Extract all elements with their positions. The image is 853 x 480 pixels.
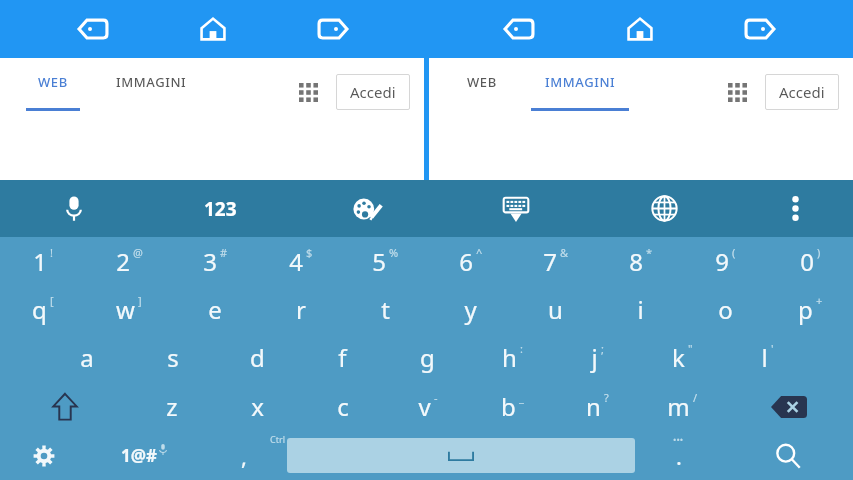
- staticText: 4: [289, 245, 303, 278]
- button[interactable]: x: [215, 382, 300, 431]
- staticText: WEB: [38, 73, 68, 91]
- staticText: 1@#: [121, 444, 157, 467]
- staticText: ": [688, 341, 693, 356]
- staticText: o: [718, 293, 733, 326]
- button[interactable]: l: [725, 333, 810, 382]
- button[interactable]: f: [300, 333, 385, 382]
- button[interactable]: h: [470, 333, 555, 382]
- button[interactable]: Voice input: [0, 180, 147, 237]
- button[interactable]: Back: [492, 2, 546, 56]
- staticText: r: [296, 293, 306, 326]
- staticText: s: [167, 341, 179, 374]
- button[interactable]: 7: [513, 237, 598, 285]
- button[interactable]: Search: [722, 431, 853, 480]
- staticText: .: [676, 441, 682, 471]
- button[interactable]: Numbers: [147, 180, 294, 237]
- staticText: 7: [543, 245, 557, 278]
- button[interactable]: i: [598, 285, 683, 333]
- button[interactable]: More options: [738, 180, 853, 237]
- button[interactable]: Ctrl: [200, 431, 287, 480]
- staticText: Ctrl: [270, 433, 285, 445]
- staticText: q: [32, 293, 47, 326]
- button[interactable]: j: [555, 333, 640, 382]
- button[interactable]: WEB: [26, 73, 80, 111]
- button[interactable]: Backspace: [725, 382, 853, 431]
- staticText: ]: [138, 293, 142, 308]
- button[interactable]: Language: [590, 180, 738, 237]
- button[interactable]: Google apps: [288, 72, 328, 112]
- button[interactable]: Back: [66, 2, 120, 56]
- button[interactable]: 3: [172, 237, 258, 285]
- button[interactable]: WEB: [455, 73, 509, 111]
- button[interactable]: IMMAGINI: [531, 73, 629, 111]
- button[interactable]: 6: [428, 237, 513, 285]
- staticText: &: [560, 245, 569, 260]
- button[interactable]: Settings: [0, 431, 87, 480]
- staticText: n: [586, 390, 601, 423]
- staticText: k: [672, 341, 685, 374]
- staticText: 8: [629, 245, 643, 278]
- staticText: $: [306, 245, 313, 260]
- staticText: 5: [372, 245, 386, 278]
- button[interactable]: c: [300, 382, 385, 431]
- staticText: a: [80, 341, 94, 374]
- button[interactable]: Shift: [0, 382, 129, 431]
- button[interactable]: 1: [0, 237, 86, 285]
- button[interactable]: Space: [287, 438, 635, 473]
- button[interactable]: q: [0, 285, 86, 333]
- staticText: -: [434, 390, 438, 405]
- staticText: !: [50, 245, 53, 260]
- button[interactable]: •••: [635, 431, 722, 480]
- staticText: %: [389, 245, 399, 260]
- button[interactable]: w: [86, 285, 172, 333]
- staticText: i: [637, 293, 644, 326]
- button[interactable]: a: [44, 333, 130, 382]
- button[interactable]: Accedi: [336, 74, 410, 110]
- button[interactable]: Home: [186, 2, 240, 56]
- button[interactable]: Theme: [294, 180, 442, 237]
- button[interactable]: r: [258, 285, 343, 333]
- button[interactable]: g: [385, 333, 470, 382]
- staticText: d: [250, 341, 265, 374]
- button[interactable]: m: [640, 382, 725, 431]
- button[interactable]: e: [172, 285, 258, 333]
- button[interactable]: 5: [343, 237, 428, 285]
- staticText: ?: [604, 390, 609, 405]
- staticText: ;: [601, 341, 604, 356]
- staticText: m: [667, 390, 690, 423]
- button[interactable]: 8: [598, 237, 683, 285]
- button[interactable]: Recents: [306, 2, 360, 56]
- staticText: _: [519, 390, 524, 405]
- staticText: 9: [715, 245, 729, 278]
- button[interactable]: Home: [613, 2, 667, 56]
- staticText: •••: [673, 433, 684, 445]
- button[interactable]: p: [768, 285, 853, 333]
- button[interactable]: o: [683, 285, 768, 333]
- button[interactable]: 1@#: [87, 431, 200, 480]
- button[interactable]: t: [343, 285, 428, 333]
- button[interactable]: k: [640, 333, 725, 382]
- button[interactable]: b: [470, 382, 555, 431]
- staticText: [: [50, 293, 54, 308]
- staticText: w: [116, 293, 135, 326]
- button[interactable]: 2: [86, 237, 172, 285]
- button[interactable]: Accedi: [765, 74, 839, 110]
- staticText: Accedi: [350, 82, 396, 102]
- button[interactable]: y: [428, 285, 513, 333]
- button[interactable]: u: [513, 285, 598, 333]
- button[interactable]: v: [385, 382, 470, 431]
- button[interactable]: Recents: [733, 2, 787, 56]
- button[interactable]: IMMAGINI: [102, 73, 200, 111]
- button[interactable]: 4: [258, 237, 343, 285]
- staticText: *: [646, 245, 653, 260]
- button[interactable]: d: [215, 333, 300, 382]
- staticText: 2: [116, 245, 130, 278]
- button[interactable]: 9: [683, 237, 768, 285]
- button[interactable]: Hide keyboard: [442, 180, 590, 237]
- button[interactable]: n: [555, 382, 640, 431]
- button[interactable]: z: [129, 382, 215, 431]
- button[interactable]: Google apps: [717, 72, 757, 112]
- button[interactable]: 0: [768, 237, 853, 285]
- button[interactable]: s: [130, 333, 215, 382]
- staticText: ,: [241, 441, 247, 471]
